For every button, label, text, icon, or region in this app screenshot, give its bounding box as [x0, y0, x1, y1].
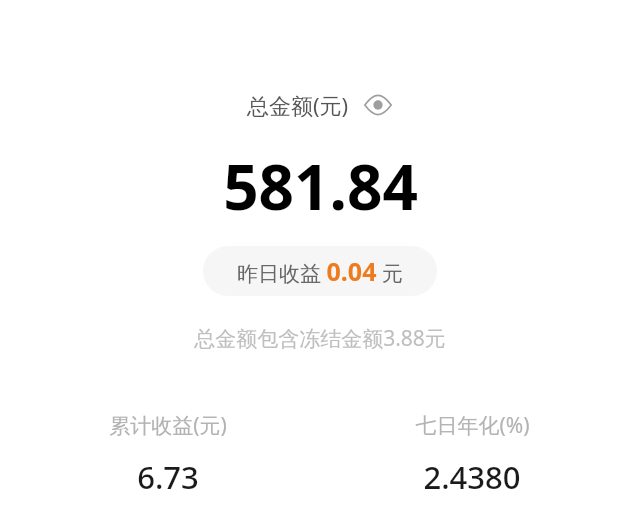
- button[interactable]: 昨日收益 0.04 元: [203, 246, 437, 296]
- staticText: 581.84: [223, 144, 418, 228]
- staticText: 昨日收益 0.04 元: [237, 254, 403, 288]
- button[interactable]: 七日年化(%): [320, 411, 624, 498]
- staticText: 累计收益(元): [109, 411, 227, 440]
- staticText: 2.4380: [423, 456, 521, 498]
- staticText: 总金额(元): [247, 90, 349, 120]
- staticText: 6.73: [137, 456, 199, 498]
- staticText: 总金额包含冻结金额3.88元: [194, 324, 446, 353]
- button[interactable]: 累计收益(元): [16, 411, 320, 498]
- other: Toggle amount visibility: [363, 93, 393, 117]
- button[interactable]: 总金额(元): [243, 88, 397, 122]
- staticText: 七日年化(%): [415, 411, 530, 440]
